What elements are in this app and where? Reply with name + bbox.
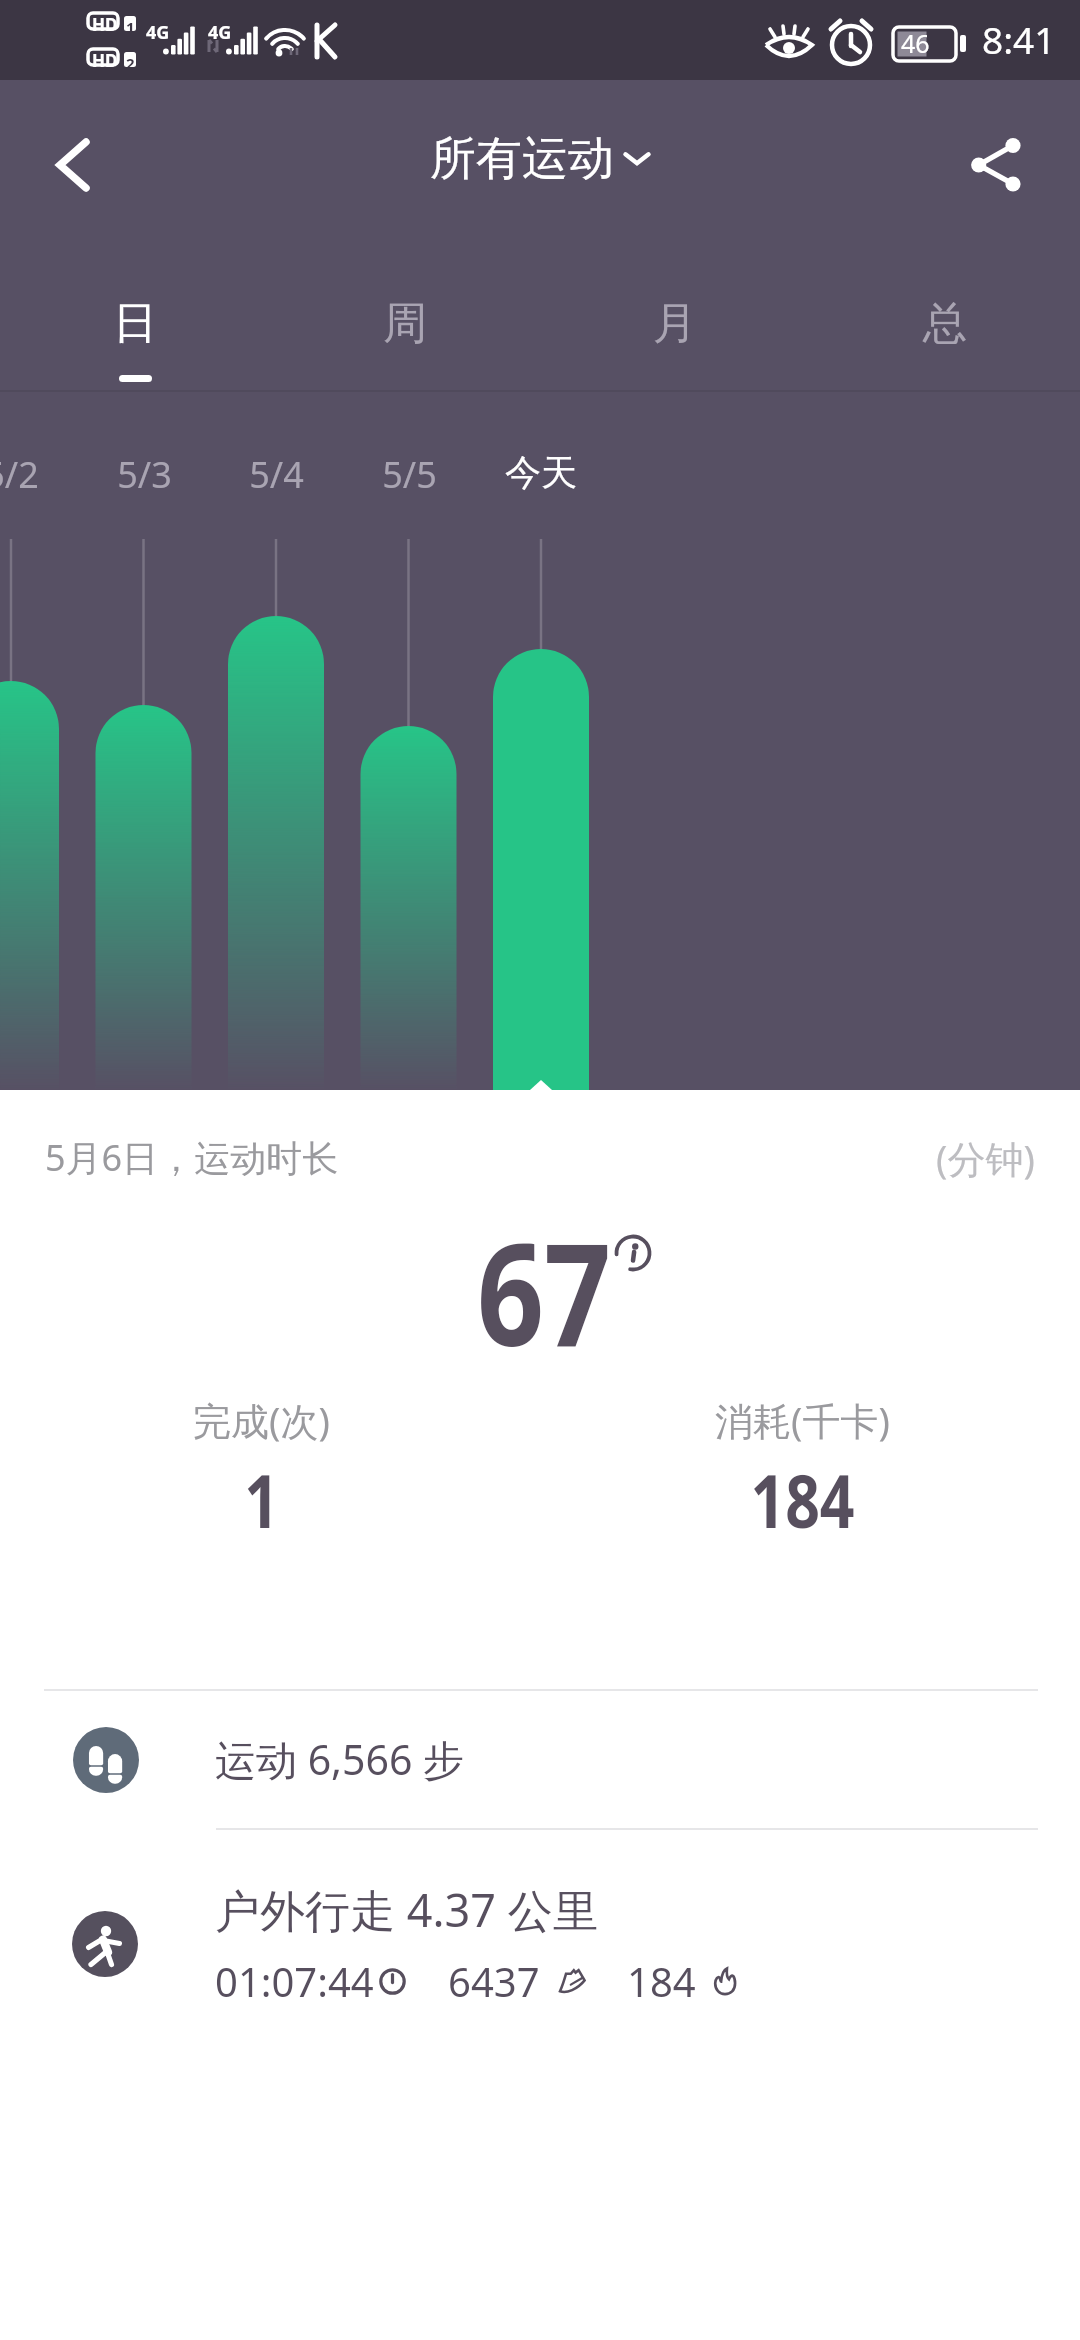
button[interactable]: 消耗(千卡) — [622, 1394, 982, 1550]
staticText: 5/4 — [249, 450, 304, 499]
staticText: 67 — [477, 1194, 611, 1387]
button[interactable]: 完成(次) — [81, 1394, 441, 1550]
staticText: 01:07:44 — [215, 1954, 374, 2008]
staticText: 4G — [146, 20, 170, 45]
staticText: 月 — [653, 296, 697, 351]
staticText: 总 — [923, 296, 967, 351]
staticText: 6437 — [448, 1954, 540, 2008]
button[interactable]: 总 — [810, 238, 1080, 392]
staticText: 5/5 — [382, 450, 437, 499]
staticText: 4G — [208, 20, 232, 45]
staticText: HD — [92, 13, 118, 36]
staticText: 今天 — [505, 450, 577, 495]
staticText: 1 — [126, 17, 135, 37]
button[interactable]: 所有运动 — [430, 130, 650, 188]
staticText: 完成(次) — [193, 1394, 330, 1446]
button[interactable]: Share — [938, 99, 1058, 219]
staticText: 5/3 — [117, 450, 172, 499]
button[interactable]: 户外行走 4.37 公里 — [0, 1841, 1080, 2046]
staticText: 184 — [750, 1449, 854, 1550]
staticText: 8:41 — [982, 14, 1056, 64]
button[interactable]: Day column — [78, 392, 210, 1090]
button[interactable]: 日 — [0, 238, 270, 392]
button[interactable]: Day column — [210, 392, 342, 1090]
staticText: 5/2 — [0, 450, 39, 499]
staticText: 5月6日，运动时长 — [45, 1133, 339, 1182]
staticText: 1 — [244, 1449, 279, 1550]
staticText: 2 — [126, 53, 135, 73]
staticText: 46 — [901, 26, 930, 60]
staticText: (分钟) — [936, 1132, 1035, 1184]
staticText: 日 — [113, 296, 157, 351]
staticText: 户外行走 4.37 公里 — [215, 1879, 598, 1940]
button[interactable]: Day column — [0, 392, 77, 1090]
button[interactable]: Day column — [475, 392, 607, 1090]
staticText: 184 — [627, 1954, 696, 2008]
staticText: 消耗(千卡) — [715, 1394, 890, 1446]
button[interactable]: Day column — [343, 392, 475, 1090]
staticText: 运动 6,566 步 — [215, 1731, 465, 1787]
button[interactable]: 月 — [540, 238, 810, 392]
staticText: HD — [92, 49, 118, 72]
button[interactable]: Info — [614, 1234, 652, 1272]
button[interactable]: 周 — [270, 238, 540, 392]
staticText: 周 — [383, 296, 427, 351]
button[interactable]: Back — [12, 99, 132, 219]
staticText: 所有运动 — [430, 130, 614, 188]
button[interactable]: 运动 6,566 步 — [0, 1691, 1080, 1829]
